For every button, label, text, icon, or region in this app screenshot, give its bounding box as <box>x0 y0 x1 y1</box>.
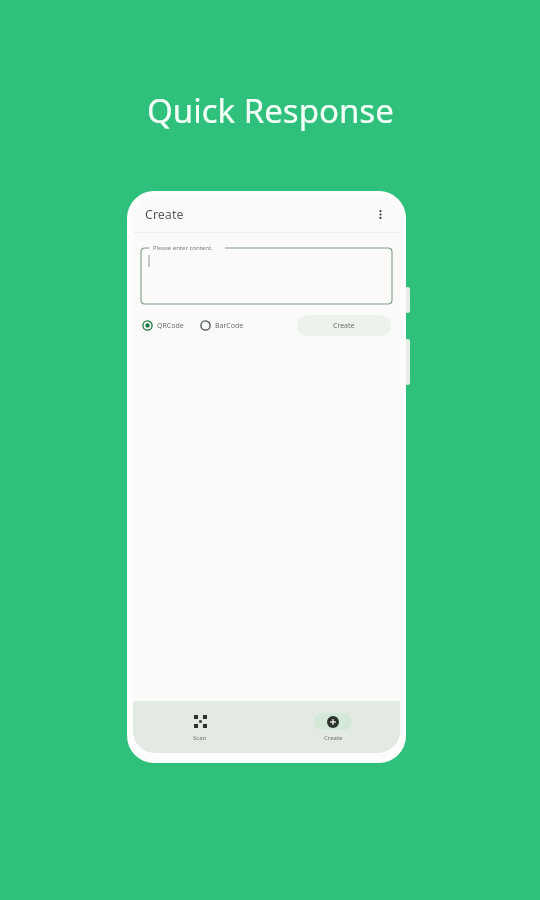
other: Scan <box>194 715 207 728</box>
staticText: Create <box>145 206 184 223</box>
button[interactable]: BarCode <box>200 318 244 333</box>
staticText: Please enter content. <box>153 244 213 252</box>
staticText: Create <box>324 734 343 742</box>
button[interactable]: Create <box>266 713 400 742</box>
staticText: Scan <box>193 734 207 742</box>
staticText: QRCode <box>157 321 184 331</box>
staticText: Quick Response <box>147 88 394 133</box>
staticText: Create <box>333 321 355 331</box>
other: Create <box>327 716 339 728</box>
button[interactable]: More options <box>370 204 390 224</box>
button[interactable]: Scan <box>133 713 266 742</box>
button[interactable]: Create <box>297 315 391 336</box>
button[interactable]: QRCode <box>142 318 184 333</box>
staticText: BarCode <box>215 321 244 331</box>
